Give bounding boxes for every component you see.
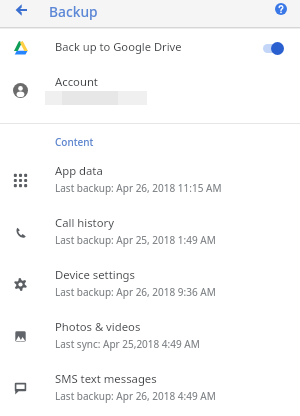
staticText: Last sync: Apr 25,2018 4:49 AM <box>55 337 200 351</box>
staticText: App data <box>55 163 103 178</box>
staticText: Device settings <box>55 267 135 282</box>
button[interactable]: Back up to Google Drive <box>0 29 300 69</box>
button[interactable]: Back <box>8 0 34 26</box>
staticText: Last backup: Apr 26, 2018 4:49 AM <box>55 389 216 403</box>
staticText: Account <box>55 74 98 89</box>
staticText: Last backup: Apr 25, 2018 1:49 AM <box>55 233 216 247</box>
button[interactable]: Photos & videos <box>0 310 300 362</box>
staticText: Content <box>55 135 94 149</box>
button[interactable]: Device settings <box>0 258 300 310</box>
button[interactable]: App data <box>0 154 300 206</box>
button[interactable]: Help <box>267 0 293 26</box>
button[interactable]: Call history <box>0 206 300 258</box>
staticText: Back up to Google Drive <box>55 39 182 54</box>
button[interactable]: SMS text messages <box>0 362 300 414</box>
staticText: Backup <box>49 2 98 21</box>
staticText: Last backup: Apr 26, 2018 9:36 AM <box>55 285 216 299</box>
staticText: Photos & videos <box>55 319 141 334</box>
button[interactable]: Account <box>0 69 300 114</box>
staticText: SMS text messages <box>55 371 157 386</box>
staticText: Last backup: Apr 26, 2018 11:15 AM <box>55 181 222 195</box>
staticText: Call history <box>55 215 114 230</box>
